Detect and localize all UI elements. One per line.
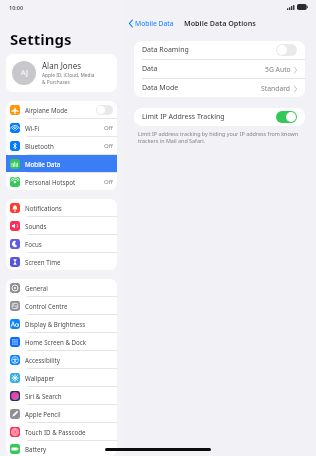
staticText: Alan Jones [42,60,81,71]
button[interactable]: Apple Pencil [6,405,117,422]
staticText: Limit IP address tracking by hiding your… [138,130,299,144]
button[interactable]: Sounds [6,217,117,234]
button[interactable]: On [276,111,297,123]
staticText: Control Centre [25,302,113,310]
staticText: Display & Brightness [25,320,113,328]
staticText: 5G Auto [265,65,291,74]
staticText: Siri & Search [25,392,113,400]
staticText: Sounds [25,222,113,230]
button[interactable]: Control Centre [6,297,117,314]
staticText: Battery [25,445,113,453]
button[interactable]: Mobile Data [6,155,117,172]
button[interactable]: Home Screen & Dock [6,333,117,350]
button[interactable]: Data [134,60,305,78]
staticText: Off [104,124,113,132]
staticText: Notifications [25,204,113,212]
button[interactable]: Mobile Data [123,17,178,30]
button[interactable]: Personal Hotspot [6,173,117,190]
button[interactable]: Off [276,44,297,56]
staticText: Limit IP Address Tracking [142,112,276,122]
button[interactable]: Data Mode [134,79,305,97]
staticText: Wi-Fi [25,124,104,132]
button[interactable]: Accessibility [6,351,117,368]
staticText: Mobile Data Options [184,18,256,28]
button[interactable]: Airplane Mode [6,101,117,118]
staticText: General [25,284,113,292]
staticText: Off [104,178,113,186]
staticText: Screen Time [25,258,113,266]
button[interactable]: Data Roaming [134,41,305,59]
staticText: Focus [25,240,113,248]
button[interactable]: Wallpaper [6,369,117,386]
button[interactable]: Screen Time [6,253,117,270]
button[interactable]: Wi-Fi [6,119,117,136]
staticText: Mobile Data [135,19,174,28]
staticText: Accessibility [25,356,113,364]
staticText: Data Mode [142,83,261,93]
staticText: AJ [21,68,28,78]
staticText: Home Screen & Dock [25,338,113,346]
button[interactable]: Focus [6,235,117,252]
staticText: Bluetooth [25,142,104,150]
staticText: Apple ID, iCloud, Media & Purchases [42,72,95,86]
button[interactable]: Off [96,105,113,115]
staticText: Settings [10,29,72,49]
button[interactable]: Bluetooth [6,137,117,154]
button[interactable]: General [6,279,117,296]
staticText: Standard [261,84,291,93]
staticText: Airplane Mode [25,106,96,114]
staticText: Mobile Data [25,160,113,168]
staticText: Data Roaming [142,45,276,55]
staticText: Personal Hotspot [25,178,104,186]
staticText: Wallpaper [25,374,113,382]
button[interactable]: Battery [6,441,117,456]
button[interactable]: Touch ID & Passcode [6,423,117,440]
button[interactable]: Limit IP Address Tracking [134,108,305,126]
button[interactable]: Siri & Search [6,387,117,404]
staticText: Apple Pencil [25,410,113,418]
staticText: 10:00 [9,4,24,11]
button[interactable]: Notifications [6,199,117,216]
button[interactable]: Display & Brightness [6,315,117,332]
button[interactable]: AJ [6,54,117,92]
staticText: Data [142,64,265,74]
staticText: Off [104,142,113,150]
staticText: Touch ID & Passcode [25,428,113,436]
